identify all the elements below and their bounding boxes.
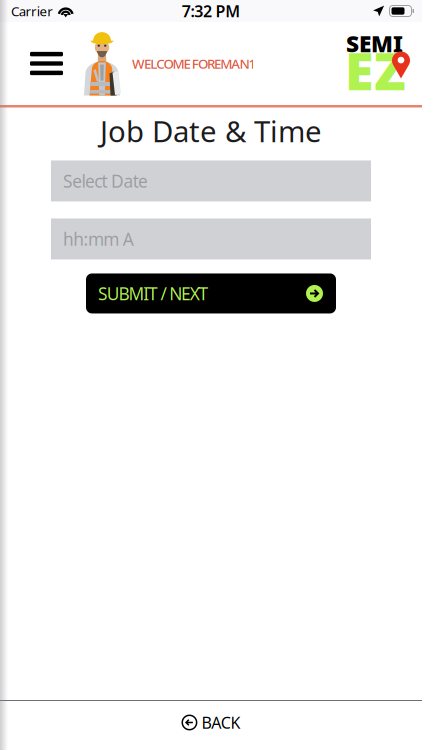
staticText: SEMI (346, 28, 403, 58)
staticText: WELCOME FOREMAN1 (132, 55, 256, 72)
staticText: BACK (201, 712, 240, 733)
staticText: hh:mm A (63, 227, 134, 250)
staticText: Job Date & Time (100, 111, 322, 150)
button[interactable]: Menu (0, 22, 81, 105)
staticText: EZ (345, 35, 406, 105)
staticText: Select Date (63, 169, 148, 192)
button[interactable]: SUBMIT / NEXT (86, 273, 336, 313)
staticText: Carrier (11, 2, 53, 20)
staticText: SUBMIT / NEXT (98, 282, 209, 305)
staticText: 7:32 PM (182, 0, 240, 22)
button[interactable]: BACK (0, 701, 422, 744)
